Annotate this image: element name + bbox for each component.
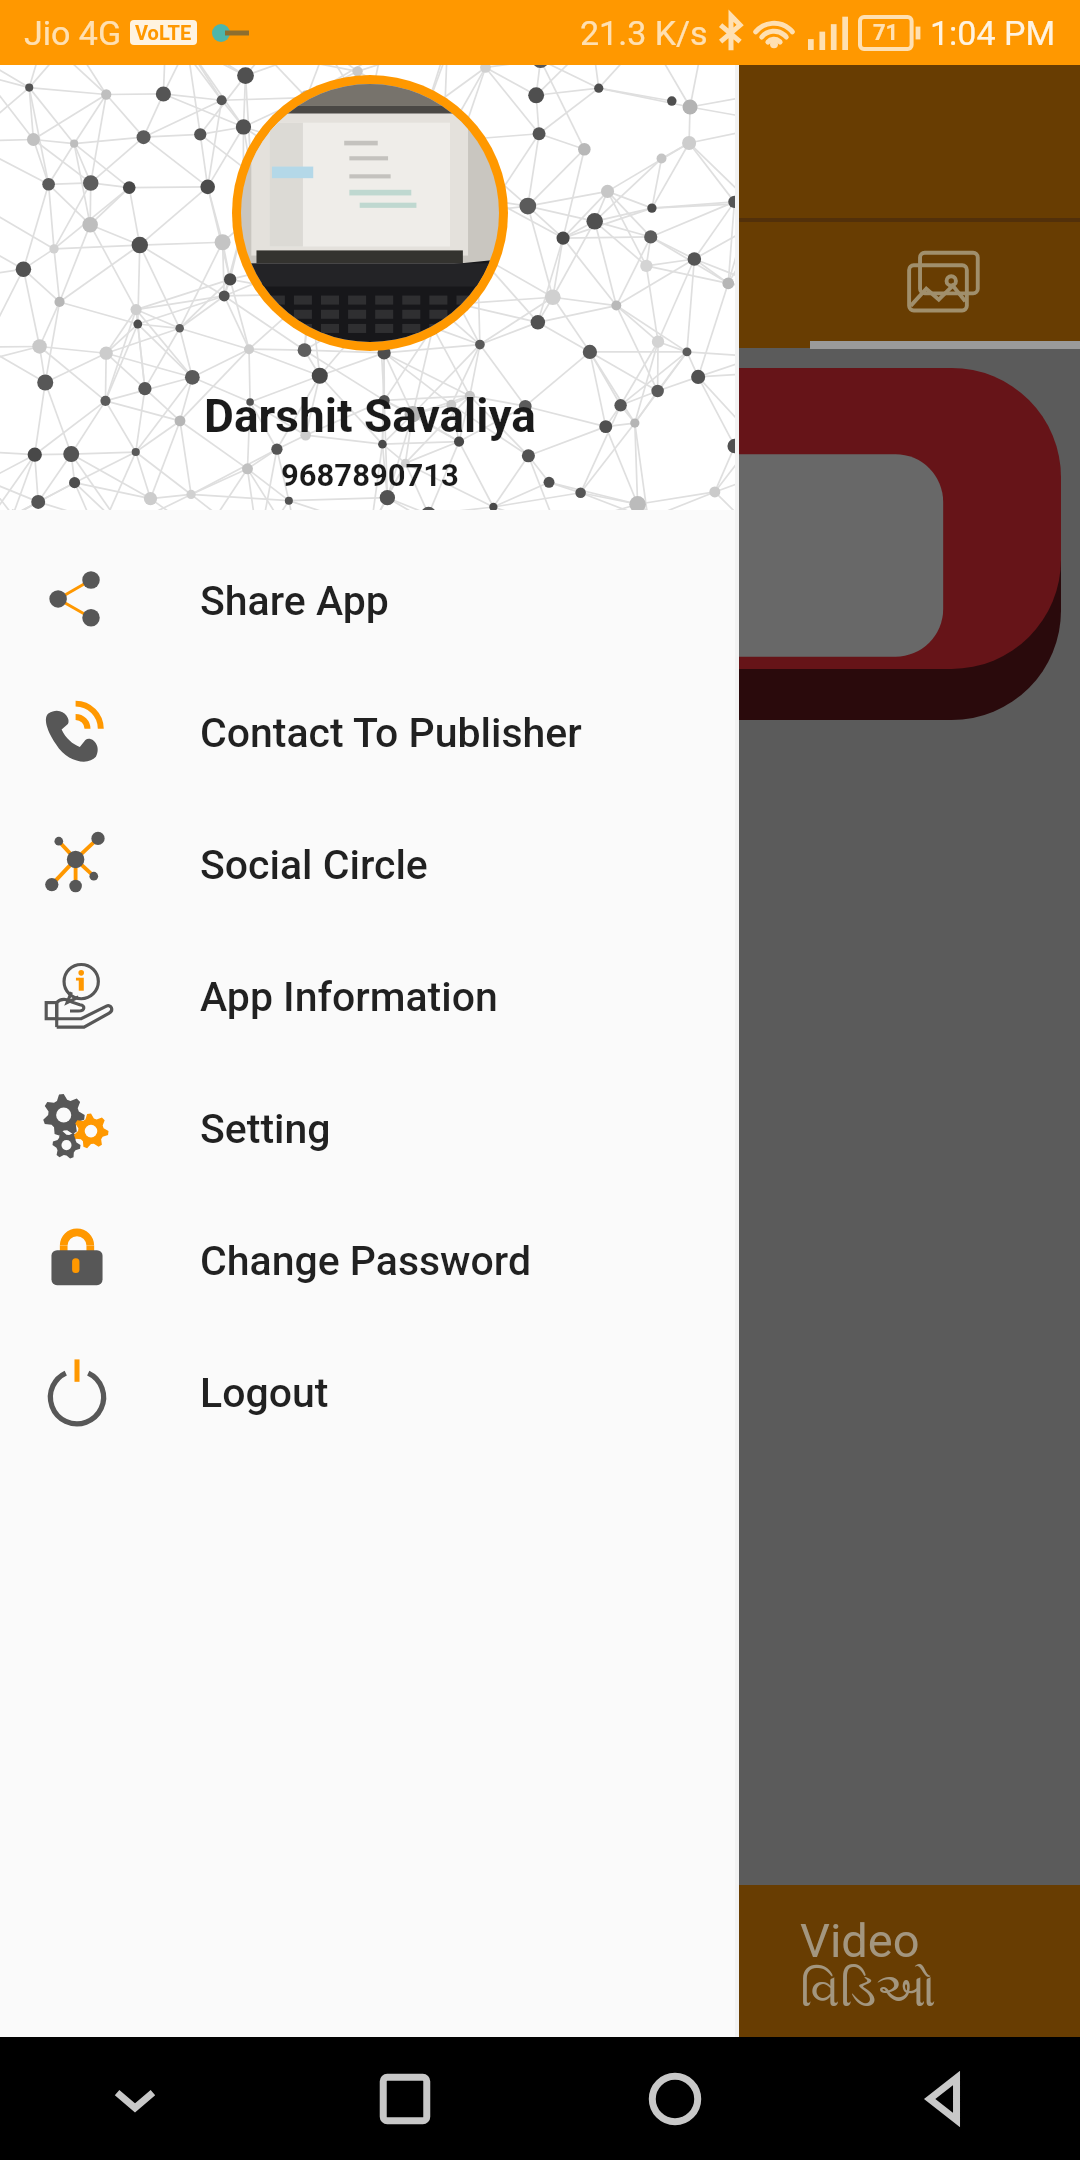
- button[interactable]: Home: [540, 2037, 810, 2160]
- staticText: Setting: [200, 1105, 331, 1153]
- staticText: 9687890713: [281, 457, 459, 493]
- staticText: Contact To Publisher: [200, 709, 582, 757]
- staticText: વિડિઓ: [800, 1968, 937, 2015]
- button[interactable]: Tab: [270, 220, 540, 348]
- button[interactable]: Social Circle: [0, 799, 739, 931]
- staticText: 1:04 PM: [930, 13, 1056, 53]
- button[interactable]: Tab: [810, 220, 1080, 348]
- button[interactable]: Tab: [0, 220, 270, 348]
- button[interactable]: Share App: [0, 535, 739, 667]
- button[interactable]: Tab: [540, 220, 810, 348]
- staticText: Social Circle: [200, 841, 428, 889]
- staticText: Jio 4G: [24, 13, 122, 53]
- staticText: App Information: [200, 973, 498, 1021]
- button[interactable]: Logout: [0, 1327, 739, 1459]
- button[interactable]: App Information: [0, 931, 739, 1063]
- button[interactable]: Hide keyboard: [0, 2037, 270, 2160]
- staticText: VoLTE: [135, 21, 192, 44]
- staticText: Share App: [200, 577, 389, 625]
- button[interactable]: Change Password: [0, 1195, 739, 1327]
- staticText: Video: [800, 1913, 920, 1968]
- button[interactable]: Back: [810, 2037, 1080, 2160]
- staticText: Darshit Savaliya: [204, 389, 536, 443]
- staticText: 71: [873, 20, 899, 46]
- staticText: Logout: [200, 1369, 329, 1417]
- button[interactable]: Setting: [0, 1063, 739, 1195]
- button[interactable]: Recent apps: [270, 2037, 540, 2160]
- button[interactable]: Contact To Publisher: [0, 667, 739, 799]
- staticText: Change Password: [200, 1237, 532, 1285]
- staticText: 21.3 K/s: [580, 13, 708, 53]
